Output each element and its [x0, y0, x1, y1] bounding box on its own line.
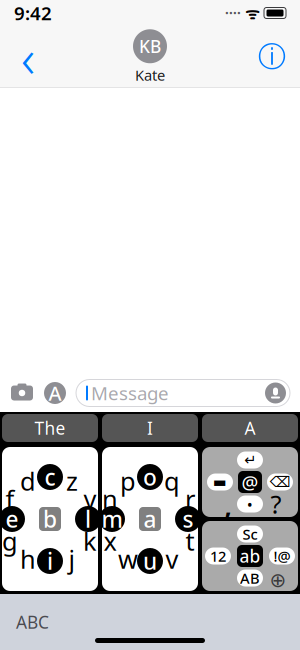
- staticText: v: [165, 542, 178, 576]
- staticText: u: [143, 546, 157, 576]
- staticText: ‹: [21, 22, 35, 92]
- staticText: A: [48, 380, 61, 406]
- staticText: ABC: [16, 610, 49, 633]
- button[interactable]: g: [0, 531, 20, 551]
- staticText: A: [244, 416, 255, 439]
- button[interactable]: a: [139, 507, 161, 531]
- staticText: ····: [225, 4, 241, 22]
- staticText: w: [118, 542, 138, 576]
- staticText: m: [101, 504, 122, 534]
- staticText: The: [34, 416, 65, 439]
- button[interactable]: b: [39, 507, 61, 531]
- staticText: c: [44, 462, 55, 492]
- button[interactable]: v: [162, 549, 182, 569]
- button[interactable]: u: [137, 548, 163, 574]
- button[interactable]: AB: [237, 569, 263, 586]
- button[interactable]: Next keyboard: [269, 571, 287, 589]
- staticText: ↵: [244, 452, 256, 468]
- staticText: !@: [273, 546, 290, 566]
- button[interactable]: h: [18, 549, 38, 569]
- button[interactable]: Back: [6, 32, 50, 82]
- button[interactable]: ⌫: [267, 473, 293, 490]
- staticText: ▬: [213, 474, 227, 490]
- button[interactable]: k: [80, 531, 100, 551]
- button[interactable]: j: [62, 549, 82, 569]
- button[interactable]: ABC: [0, 604, 49, 639]
- button[interactable]: i: [37, 548, 63, 574]
- staticText: y: [83, 482, 96, 516]
- button[interactable]: ,: [219, 497, 237, 515]
- button[interactable]: r: [180, 489, 200, 509]
- button[interactable]: ▬: [207, 473, 233, 490]
- button[interactable]: t: [180, 531, 200, 551]
- button[interactable]: x: [100, 531, 120, 551]
- staticText: ⊕: [269, 569, 286, 591]
- button[interactable]: e: [0, 506, 25, 532]
- button[interactable]: m: [99, 506, 125, 532]
- staticText: ⓘ: [258, 40, 286, 74]
- button[interactable]: d: [18, 471, 38, 491]
- button[interactable]: p: [118, 471, 138, 491]
- button[interactable]: l: [75, 506, 101, 532]
- staticText: n: [102, 482, 118, 516]
- staticText: l: [85, 504, 91, 534]
- staticText: ᯤ: [241, 2, 260, 24]
- staticText: KB: [139, 35, 161, 58]
- button[interactable]: Camera: [10, 382, 34, 404]
- button[interactable]: A: [202, 414, 298, 442]
- button[interactable]: •: [237, 495, 263, 512]
- button[interactable]: w: [118, 549, 138, 569]
- staticText: d: [20, 464, 36, 498]
- staticText: h: [20, 542, 36, 576]
- button[interactable]: KB: [133, 29, 167, 85]
- staticText: •: [247, 494, 253, 514]
- button[interactable]: @: [238, 471, 262, 493]
- staticText: t: [185, 524, 194, 558]
- staticText: Message: [91, 381, 169, 405]
- staticText: z: [66, 464, 78, 498]
- button[interactable]: Sc: [237, 525, 263, 542]
- staticText: ab: [239, 544, 260, 567]
- staticText: AB: [240, 568, 260, 588]
- staticText: e: [5, 504, 18, 534]
- staticText: 12: [210, 546, 226, 566]
- staticText: x: [103, 524, 116, 558]
- staticText: f: [5, 482, 14, 516]
- button[interactable]: s: [175, 506, 201, 532]
- staticText: o: [143, 462, 157, 492]
- staticText: ?: [270, 487, 281, 521]
- staticText: I: [147, 416, 153, 439]
- staticText: s: [182, 504, 193, 534]
- staticText: ,: [224, 489, 231, 523]
- staticText: r: [185, 482, 195, 516]
- button[interactable]: ↵: [237, 451, 263, 468]
- staticText: k: [83, 524, 97, 558]
- button[interactable]: Message: [76, 379, 290, 406]
- button[interactable]: ab: [237, 545, 263, 567]
- staticText: b: [43, 504, 57, 534]
- button[interactable]: !@: [269, 547, 295, 564]
- button[interactable]: I: [102, 414, 198, 442]
- button[interactable]: The: [2, 414, 98, 442]
- button[interactable]: 12: [205, 547, 231, 564]
- button[interactable]: z: [62, 471, 82, 491]
- staticText: Kate: [135, 65, 165, 85]
- staticText: ⌫: [269, 474, 290, 490]
- staticText: 9:42: [14, 1, 52, 25]
- staticText: Sc: [242, 524, 257, 544]
- staticText: p: [120, 464, 136, 498]
- staticText: i: [47, 546, 53, 576]
- staticText: q: [164, 464, 180, 498]
- button[interactable]: Details: [250, 32, 294, 82]
- button[interactable]: q: [162, 471, 182, 491]
- button[interactable]: y: [80, 489, 100, 509]
- button[interactable]: ?: [267, 495, 285, 513]
- button[interactable]: Apps: [44, 382, 66, 404]
- button[interactable]: f: [0, 489, 20, 509]
- button[interactable]: n: [100, 489, 120, 509]
- button[interactable]: c: [37, 464, 63, 490]
- staticText: @: [241, 470, 258, 494]
- button[interactable]: o: [137, 464, 163, 490]
- staticText: a: [143, 504, 156, 534]
- staticText: g: [2, 524, 18, 558]
